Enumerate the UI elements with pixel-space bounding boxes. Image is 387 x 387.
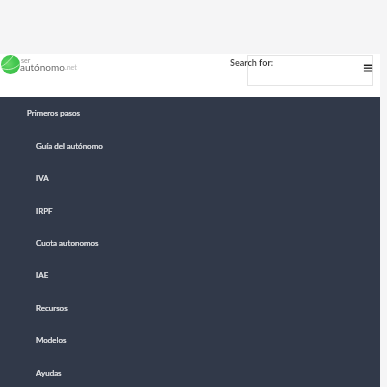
button[interactable]: IRPF xyxy=(0,195,380,227)
button[interactable]: IAE xyxy=(0,259,380,291)
button[interactable]: Guía del autónomo xyxy=(0,130,380,162)
staticText: Search for: xyxy=(230,57,274,68)
staticText: Ayudas xyxy=(36,368,62,378)
staticText: Primeros pasos xyxy=(27,108,81,118)
staticText: Recursos xyxy=(36,303,68,313)
staticText: Modelos xyxy=(36,335,67,345)
button[interactable]: Recursos xyxy=(0,292,380,324)
staticText: ser xyxy=(21,56,31,64)
staticText: IVA xyxy=(36,173,49,183)
staticText: autónomo xyxy=(20,61,65,73)
button[interactable]: ser autónomo.net xyxy=(1,54,81,80)
staticText: Cuota autonomos xyxy=(36,238,99,248)
button[interactable]: Primeros pasos xyxy=(0,97,380,129)
staticText: IRPF xyxy=(36,206,53,216)
button[interactable]: Menu xyxy=(362,62,374,74)
staticText: IAE xyxy=(36,270,49,280)
button[interactable]: Modelos xyxy=(0,324,380,356)
button[interactable]: Cuota autonomos xyxy=(0,227,380,259)
button[interactable]: Search field xyxy=(247,55,373,86)
button[interactable]: IVA xyxy=(0,162,380,194)
button[interactable]: Ayudas xyxy=(0,357,380,387)
staticText: .net xyxy=(65,63,77,71)
staticText: Guía del autónomo xyxy=(36,141,103,151)
